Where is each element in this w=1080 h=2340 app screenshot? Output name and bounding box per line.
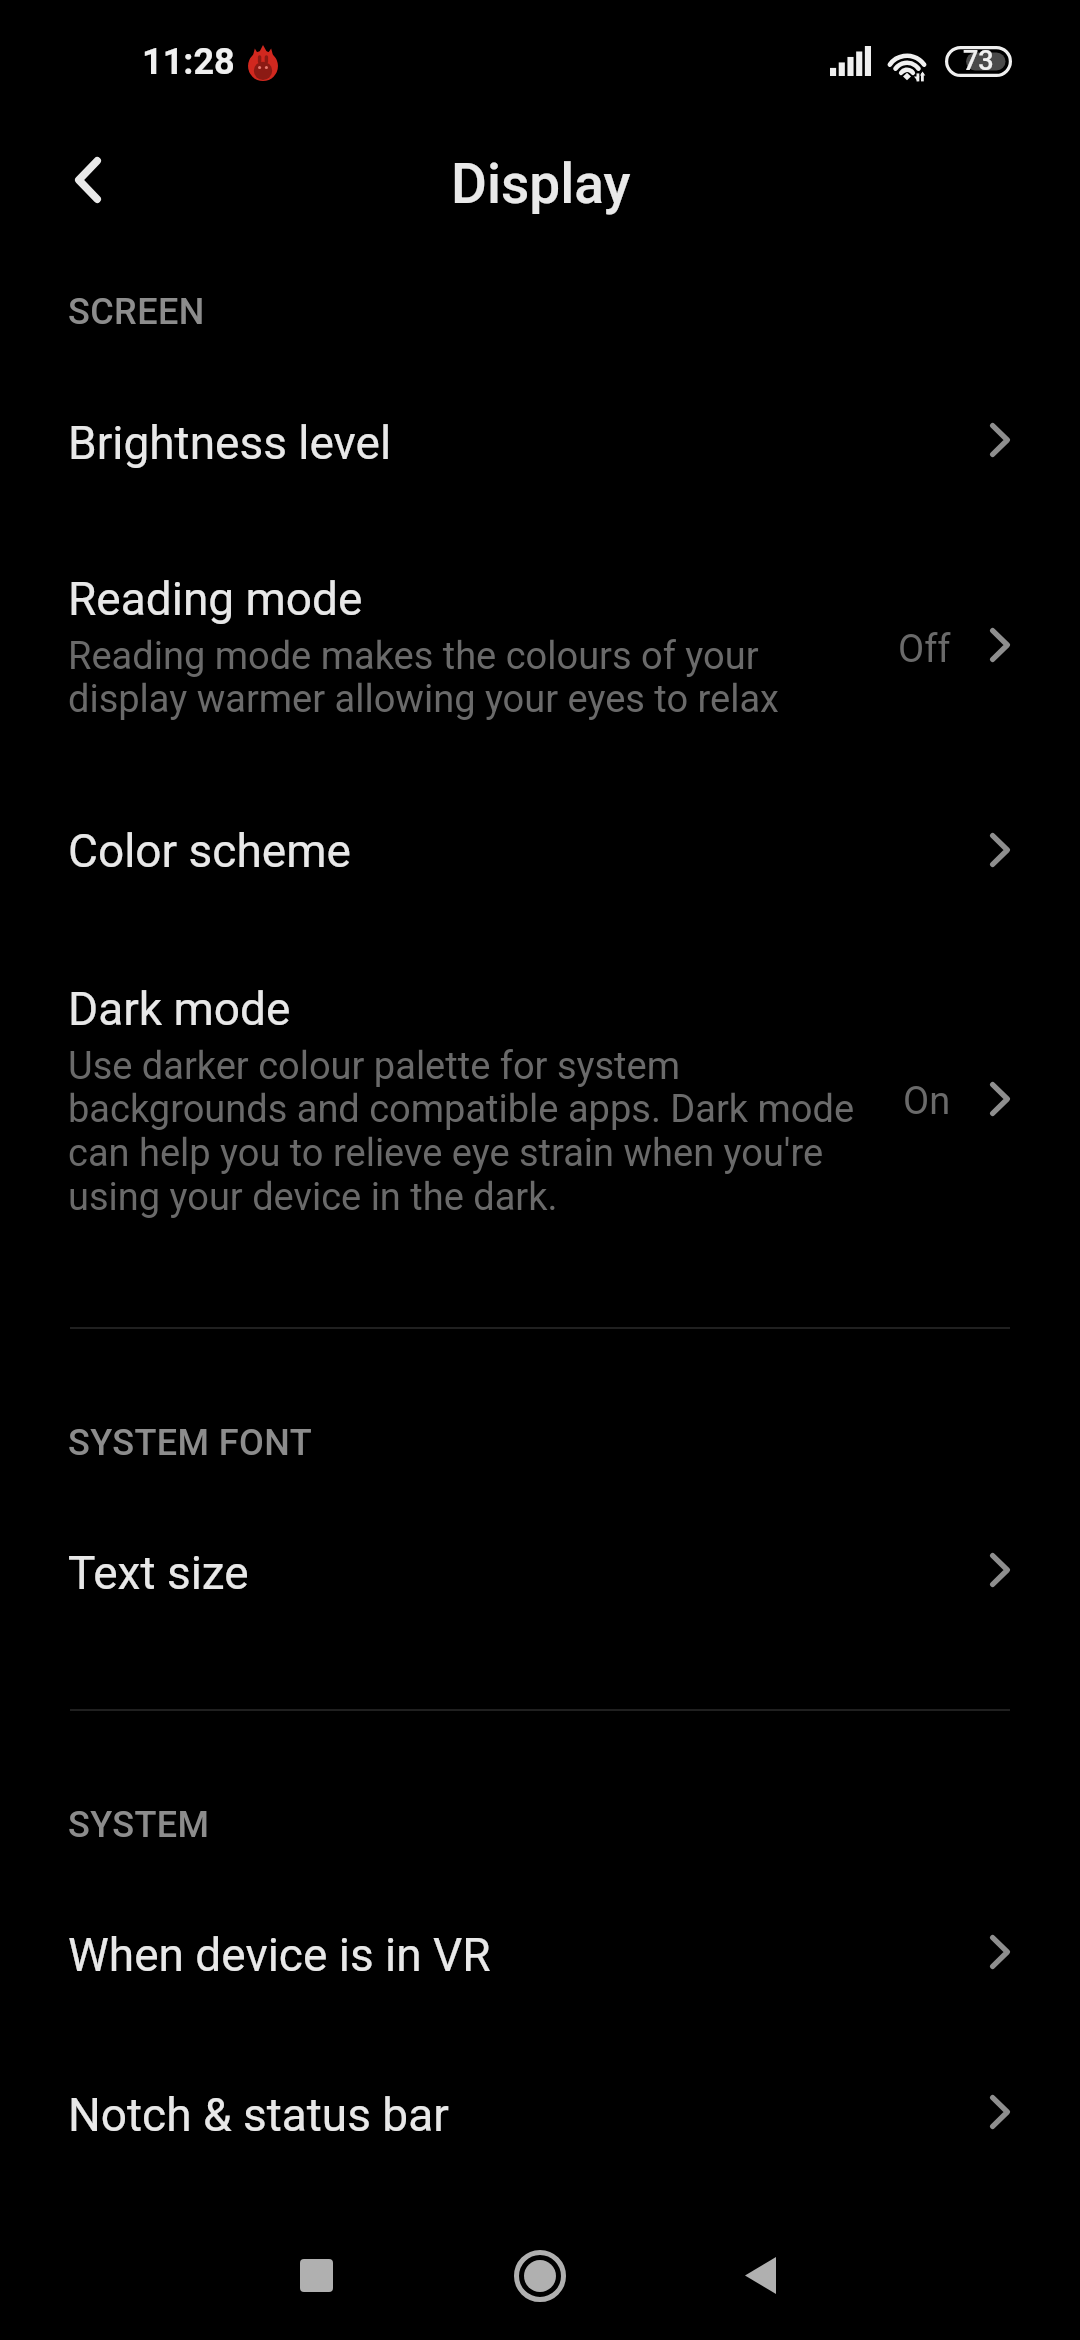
staticText: 73 (963, 45, 994, 76)
button[interactable]: Brightness level (0, 375, 1080, 500)
staticText: Text size (68, 1546, 249, 1600)
button[interactable]: Dark mode (0, 955, 1080, 1245)
button[interactable]: Text size (0, 1508, 1080, 1633)
staticText: Notch & status bar (68, 2088, 449, 2142)
button[interactable]: Navigate up (40, 132, 136, 228)
staticText: Off (898, 627, 951, 672)
staticText: SYSTEM (68, 1804, 210, 1846)
staticText: SCREEN (68, 291, 205, 333)
staticText: Display (451, 152, 631, 216)
button[interactable]: Home (460, 2203, 620, 2340)
staticText: SYSTEM FONT (68, 1422, 313, 1464)
staticText: Reading mode makes the colours of your d… (68, 634, 808, 722)
staticText: On (903, 1079, 951, 1124)
button[interactable]: Back (680, 2203, 840, 2340)
staticText: When device is in VR (68, 1928, 491, 1982)
staticText: Dark mode (68, 982, 291, 1036)
staticText: Reading mode (68, 572, 363, 626)
button[interactable]: When device is in VR (0, 1890, 1080, 2015)
staticText: Use darker colour palette for system bac… (68, 1044, 868, 1220)
button[interactable]: Notch & status bar (0, 2050, 1080, 2175)
staticText: Brightness level (68, 416, 392, 470)
button[interactable]: Color scheme (0, 790, 1080, 915)
button[interactable]: Recent apps (236, 2203, 396, 2340)
button[interactable]: Reading mode (0, 545, 1080, 745)
staticText: 11:28 (142, 41, 235, 83)
staticText: Color scheme (68, 824, 351, 878)
